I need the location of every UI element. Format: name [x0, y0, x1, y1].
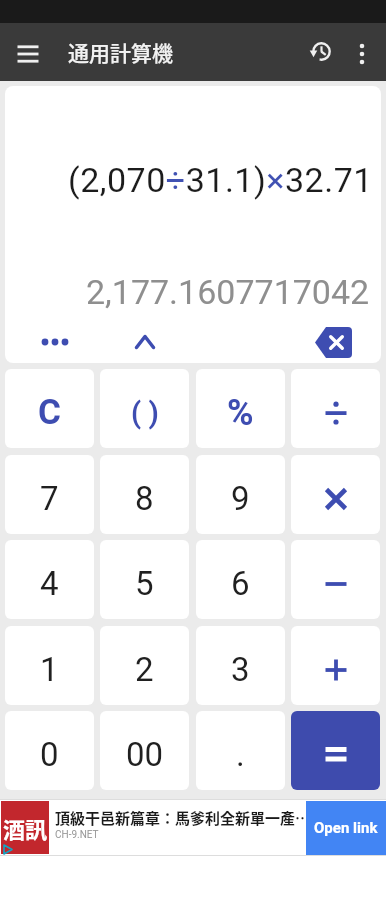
staticText: CH-9.NET	[55, 829, 99, 841]
staticText: 3	[231, 650, 250, 689]
staticText: 0	[40, 735, 59, 774]
staticText: 4	[40, 564, 59, 603]
staticText: ( )	[131, 396, 159, 430]
staticText: 通用計算機	[68, 37, 173, 67]
staticText: 7	[40, 479, 59, 518]
staticText: 1	[40, 650, 59, 689]
staticText: %	[227, 392, 254, 434]
staticText: 9	[231, 479, 250, 518]
staticText: Open link	[314, 819, 378, 837]
staticText: 酒訊	[3, 812, 48, 844]
staticText: 8	[135, 479, 154, 518]
staticText: 2,177.1607717042	[86, 272, 370, 312]
staticText: 2	[135, 650, 154, 689]
staticText: C	[38, 392, 61, 433]
staticText: 頂級干邑新篇章：馬爹利全新單一產品系列上市	[55, 807, 314, 829]
staticText: .	[236, 735, 245, 774]
staticText: 5	[135, 564, 154, 603]
staticText: 6	[231, 564, 250, 603]
staticText: (2,070÷31.1)×32.71	[68, 160, 373, 200]
staticText: 00	[126, 735, 164, 774]
